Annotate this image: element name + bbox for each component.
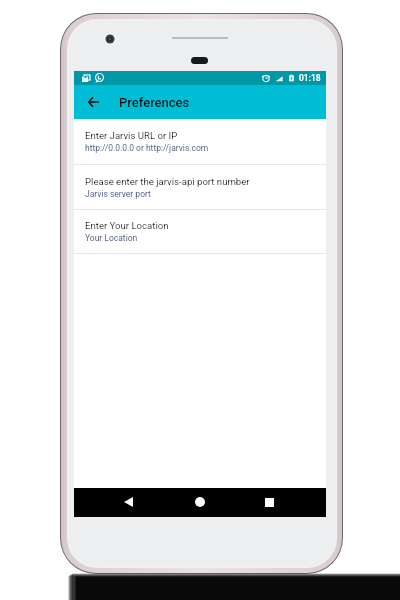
staticText: 01:18 (299, 73, 321, 83)
button[interactable]: Back (118, 492, 138, 512)
button[interactable]: Please enter the jarvis-api port number (74, 165, 326, 210)
staticText: http://0.0.0.0 or http://jarvis.com (85, 143, 209, 153)
staticText: Enter Your Location (85, 220, 169, 231)
staticText: Jarvis server port (85, 189, 151, 199)
staticText: Your Location (85, 233, 138, 243)
button[interactable]: Enter Jarvis URL or IP (74, 119, 326, 165)
button[interactable]: Navigate up (81, 90, 105, 114)
button[interactable]: Home (190, 492, 210, 512)
staticText: Enter Jarvis URL or IP (85, 130, 178, 141)
button[interactable]: Enter Your Location (74, 209, 326, 254)
staticText: Preferences (119, 95, 190, 110)
button[interactable]: Recent apps (259, 492, 279, 512)
staticText: Please enter the jarvis-api port number (85, 176, 250, 187)
